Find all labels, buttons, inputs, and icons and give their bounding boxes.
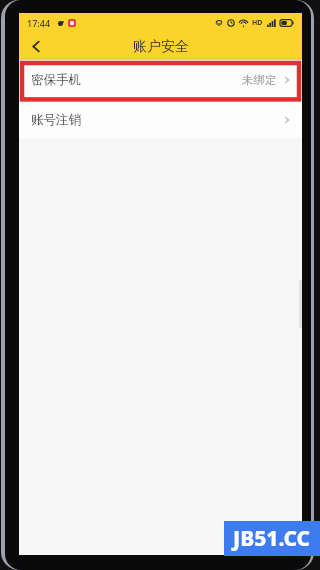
button[interactable]: 账号注销 bbox=[19, 101, 302, 138]
staticText: 17:44 bbox=[27, 17, 51, 29]
staticText: 未绑定 bbox=[242, 73, 277, 87]
staticText: 账户安全 bbox=[133, 38, 189, 56]
staticText: HD bbox=[252, 18, 263, 28]
button[interactable]: Back bbox=[19, 33, 53, 60]
staticText: JB51.CC bbox=[233, 524, 311, 553]
staticText: 密保手机 bbox=[31, 72, 81, 88]
staticText: 账号注销 bbox=[31, 112, 81, 128]
button[interactable]: 密保手机 bbox=[19, 60, 302, 100]
